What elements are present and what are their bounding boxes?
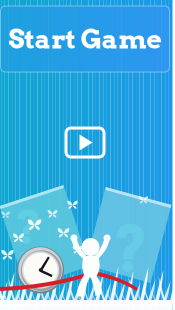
staticText: ? [113,212,149,286]
button[interactable]: Start Game [0,6,169,72]
staticText: ? [15,200,41,255]
staticText: Start Game [8,23,161,55]
button[interactable]: Play [66,128,104,157]
